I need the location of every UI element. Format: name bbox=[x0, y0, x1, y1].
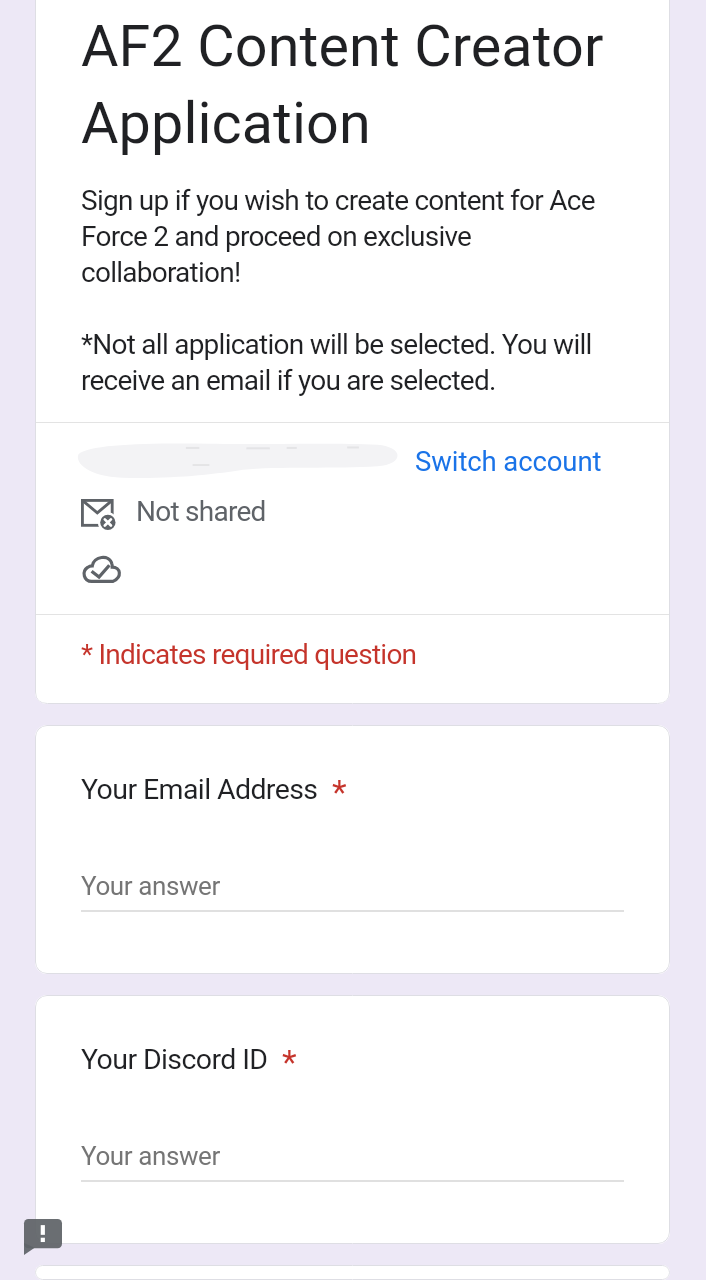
staticText: AF2 Content Creator Application bbox=[81, 5, 620, 159]
button[interactable]: Your YouTube Channel bbox=[35, 1265, 670, 1280]
staticText: Sign up if you wish to create content fo… bbox=[81, 182, 620, 290]
button[interactable]: Your Discord ID bbox=[35, 995, 670, 1244]
button[interactable]: Your Email Address bbox=[35, 725, 670, 974]
staticText: Your answer bbox=[81, 869, 220, 902]
staticText: *Not all application will be selected. Y… bbox=[81, 326, 620, 398]
staticText: Your Discord ID bbox=[81, 1041, 268, 1077]
staticText: Not shared bbox=[136, 493, 266, 528]
button[interactable]: Send feedback bbox=[24, 1219, 62, 1255]
button[interactable]: Switch account bbox=[411, 438, 606, 484]
staticText: Your answer bbox=[81, 1139, 220, 1172]
staticText: * bbox=[332, 770, 347, 806]
staticText: Your Email Address bbox=[81, 771, 318, 807]
staticText: Switch account bbox=[415, 444, 602, 478]
staticText: * bbox=[282, 1040, 297, 1076]
staticText: * Indicates required question bbox=[81, 636, 417, 671]
